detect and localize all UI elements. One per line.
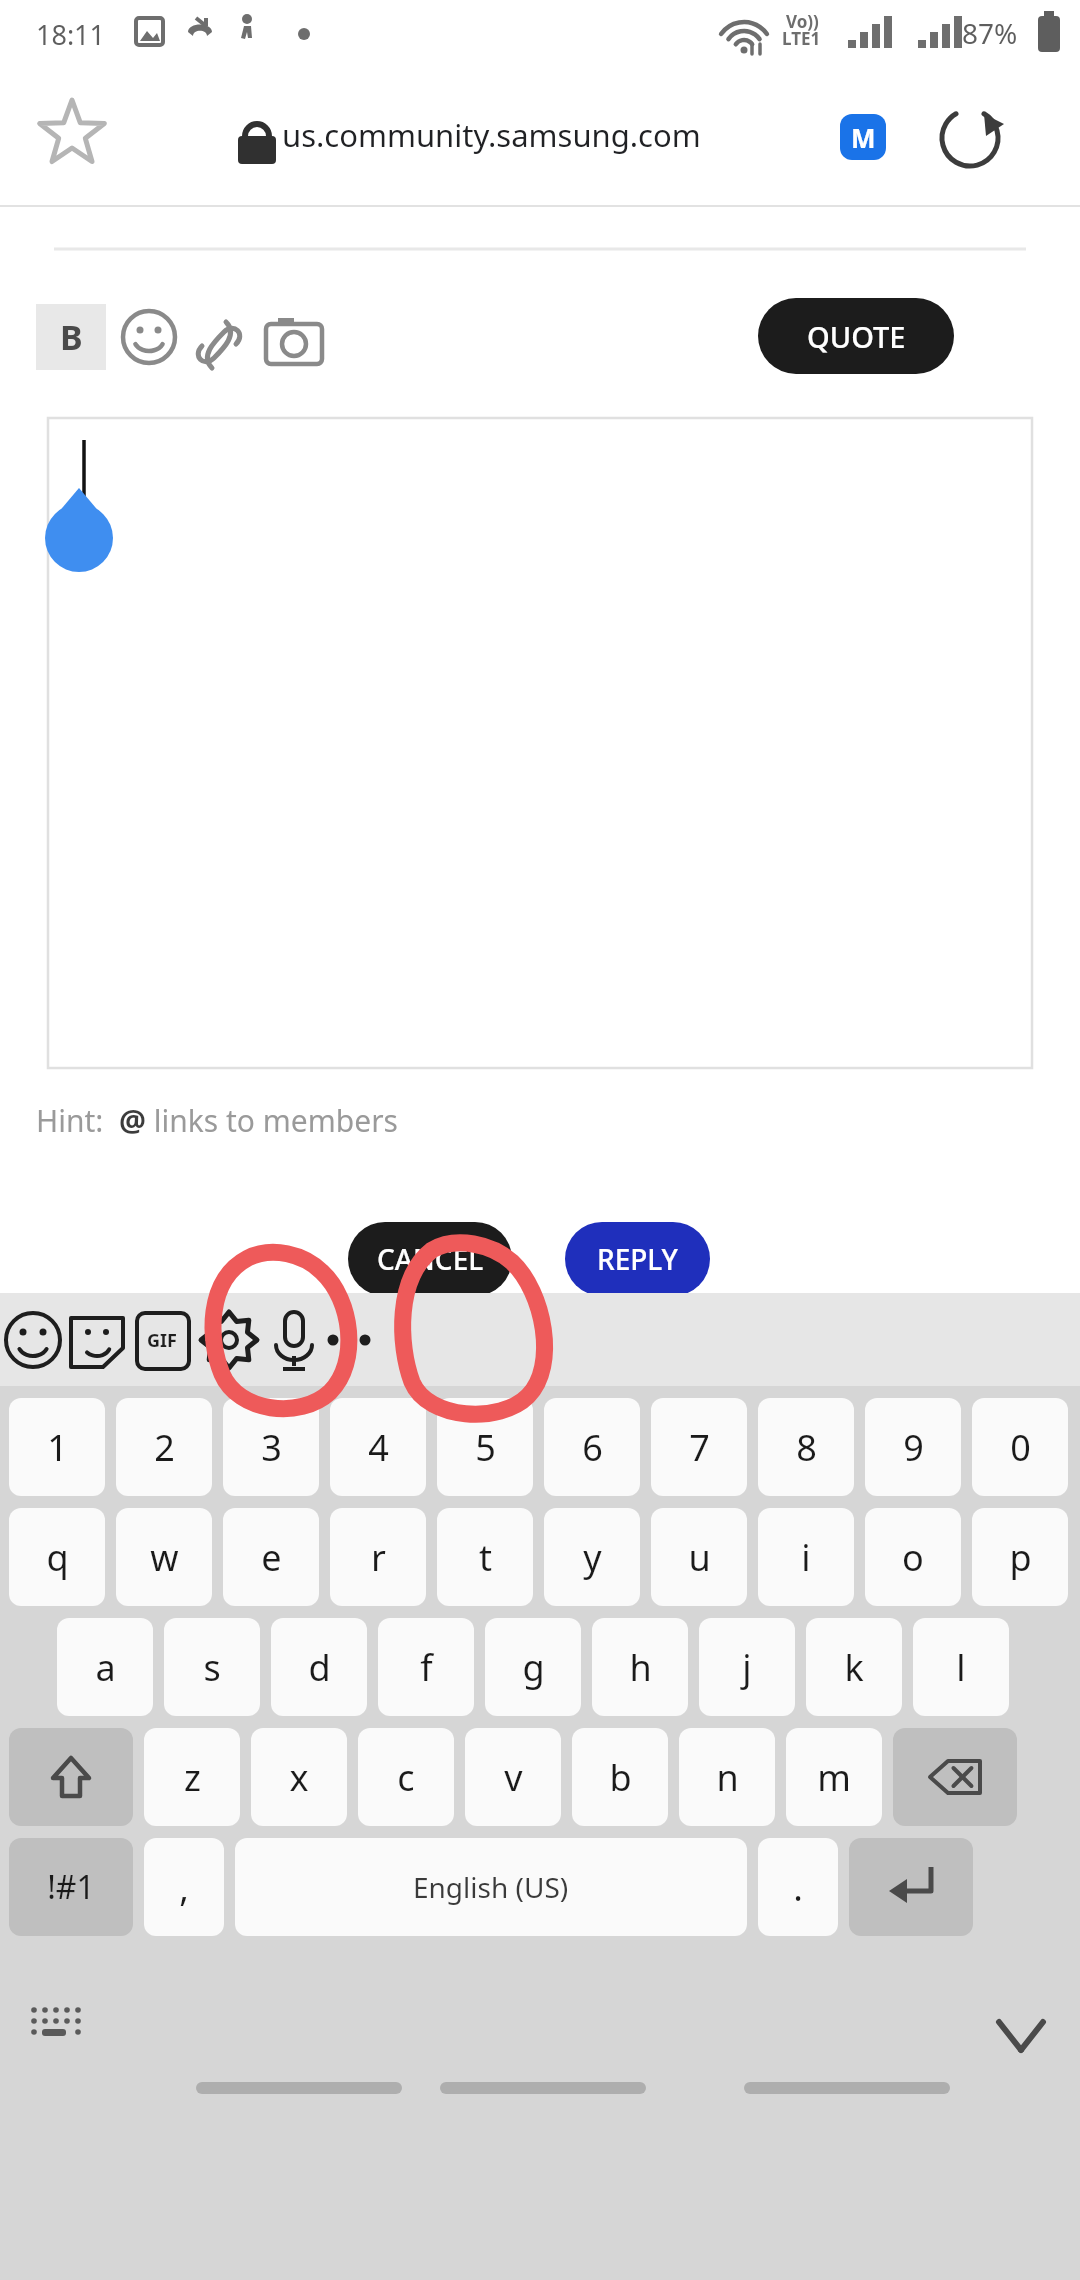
button[interactable]: Insert photo	[262, 308, 324, 370]
button[interactable]: GIF	[131, 1309, 193, 1371]
button[interactable]: Insert link	[190, 306, 252, 368]
staticText: a	[95, 1643, 116, 1692]
staticText: h	[629, 1643, 652, 1692]
button[interactable]: Shift	[9, 1728, 133, 1826]
button[interactable]: i	[758, 1508, 854, 1606]
staticText: i	[801, 1533, 811, 1582]
button[interactable]: f	[378, 1618, 474, 1716]
button[interactable]: 3	[223, 1398, 319, 1496]
staticText: @	[119, 1100, 146, 1141]
button[interactable]: 5	[437, 1398, 533, 1496]
staticText: B	[60, 314, 83, 360]
staticText: l	[956, 1643, 966, 1692]
button[interactable]: Emoji	[2, 1309, 64, 1371]
button[interactable]: 8	[758, 1398, 854, 1496]
button[interactable]: Voice input	[263, 1309, 325, 1371]
staticText: d	[308, 1643, 331, 1692]
button[interactable]: 7	[651, 1398, 747, 1496]
button[interactable]: j	[699, 1618, 795, 1716]
staticText: REPLY	[597, 1240, 678, 1278]
staticText: n	[716, 1753, 739, 1802]
staticText: c	[397, 1753, 415, 1802]
staticText: 4	[368, 1423, 389, 1472]
button[interactable]: r	[330, 1508, 426, 1606]
staticText: M	[851, 120, 876, 155]
button[interactable]: Emoji	[118, 306, 180, 368]
staticText: e	[261, 1533, 282, 1582]
button[interactable]: n	[679, 1728, 775, 1826]
button[interactable]: q	[9, 1508, 105, 1606]
button[interactable]: QUOTE	[758, 298, 954, 374]
button[interactable]: Reload	[936, 104, 1004, 172]
staticText: z	[184, 1753, 201, 1802]
button[interactable]: s	[164, 1618, 260, 1716]
staticText: QUOTE	[807, 317, 906, 356]
button[interactable]: z	[144, 1728, 240, 1826]
staticText: 2	[154, 1423, 175, 1472]
button[interactable]: Hide keyboard	[990, 2002, 1052, 2064]
staticText: 5	[475, 1423, 496, 1472]
button[interactable]: CANCEL	[348, 1222, 512, 1296]
button[interactable]: k	[806, 1618, 902, 1716]
button[interactable]: !#1	[9, 1838, 133, 1936]
button[interactable]: Stickers	[66, 1309, 128, 1371]
button[interactable]: More options	[318, 1309, 380, 1371]
staticText: f	[420, 1643, 433, 1692]
staticText: k	[844, 1643, 864, 1692]
staticText: v	[504, 1753, 523, 1802]
button[interactable]: B	[36, 304, 106, 370]
staticText: 3	[261, 1423, 282, 1472]
button[interactable]: Messenger	[840, 114, 886, 160]
button[interactable]: 0	[972, 1398, 1068, 1496]
staticText: 9	[903, 1423, 924, 1472]
button[interactable]: t	[437, 1508, 533, 1606]
button[interactable]: x	[251, 1728, 347, 1826]
button[interactable]: d	[271, 1618, 367, 1716]
button[interactable]: English (US)	[235, 1838, 747, 1936]
staticText: links to members	[146, 1100, 398, 1141]
staticText: English (US)	[413, 1868, 569, 1906]
button[interactable]: h	[592, 1618, 688, 1716]
button[interactable]: Backspace	[893, 1728, 1017, 1826]
button[interactable]: y	[544, 1508, 640, 1606]
button[interactable]: o	[865, 1508, 961, 1606]
button[interactable]: Bookmark	[36, 98, 108, 170]
button[interactable]: Keyboard settings	[198, 1309, 260, 1371]
button[interactable]: 2	[116, 1398, 212, 1496]
button[interactable]: e	[223, 1508, 319, 1606]
button[interactable]: .	[758, 1838, 838, 1936]
staticText: us.community.samsung.com	[282, 114, 701, 156]
button[interactable]: c	[358, 1728, 454, 1826]
button[interactable]: 4	[330, 1398, 426, 1496]
staticText: b	[609, 1753, 632, 1802]
button[interactable]: g	[485, 1618, 581, 1716]
button[interactable]: b	[572, 1728, 668, 1826]
button[interactable]: v	[465, 1728, 561, 1826]
staticText: 1	[47, 1423, 68, 1472]
button[interactable]: ,	[144, 1838, 224, 1936]
staticText: s	[203, 1643, 221, 1692]
button[interactable]: u	[651, 1508, 747, 1606]
button[interactable]: p	[972, 1508, 1068, 1606]
staticText: CANCEL	[377, 1240, 484, 1278]
button[interactable]: us.community.samsung.com	[282, 114, 701, 156]
button[interactable]: REPLY	[565, 1222, 710, 1296]
staticText: y	[583, 1533, 602, 1582]
staticText: p	[1009, 1533, 1032, 1582]
button[interactable]: 9	[865, 1398, 961, 1496]
staticText: Hint:	[36, 1100, 119, 1141]
button[interactable]: l	[913, 1618, 1009, 1716]
staticText: GIF	[147, 1328, 177, 1353]
staticText: 18:11	[36, 16, 106, 53]
button[interactable]: Enter	[849, 1838, 973, 1936]
button[interactable]: m	[786, 1728, 882, 1826]
button[interactable]: 1	[9, 1398, 105, 1496]
staticText: Vo))	[786, 10, 819, 33]
staticText: !#1	[47, 1865, 95, 1909]
staticText: r	[371, 1533, 386, 1582]
button[interactable]: 6	[544, 1398, 640, 1496]
button[interactable]: w	[116, 1508, 212, 1606]
staticText: u	[688, 1533, 711, 1582]
staticText: .	[793, 1863, 803, 1912]
button[interactable]: a	[57, 1618, 153, 1716]
